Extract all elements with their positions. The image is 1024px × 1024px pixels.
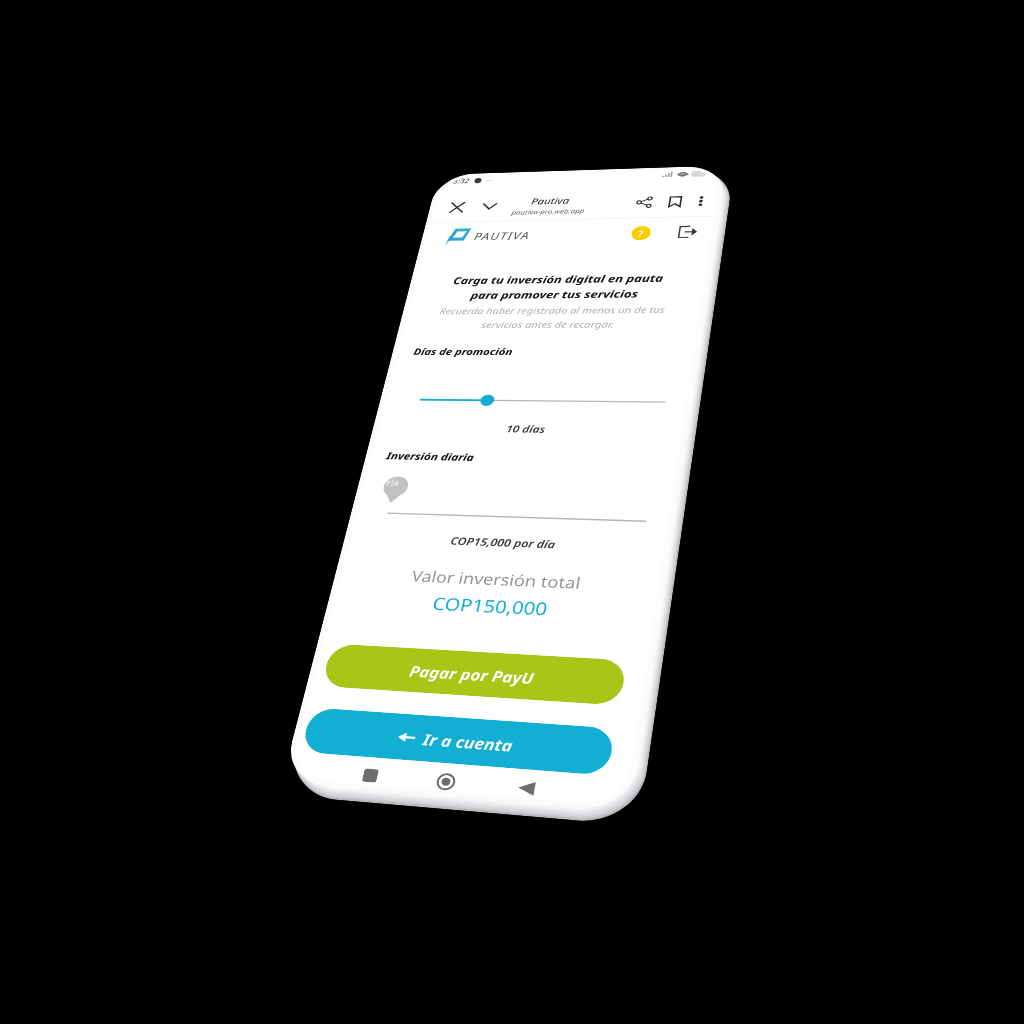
button[interactable]: Ir a cuenta [11,716,305,765]
